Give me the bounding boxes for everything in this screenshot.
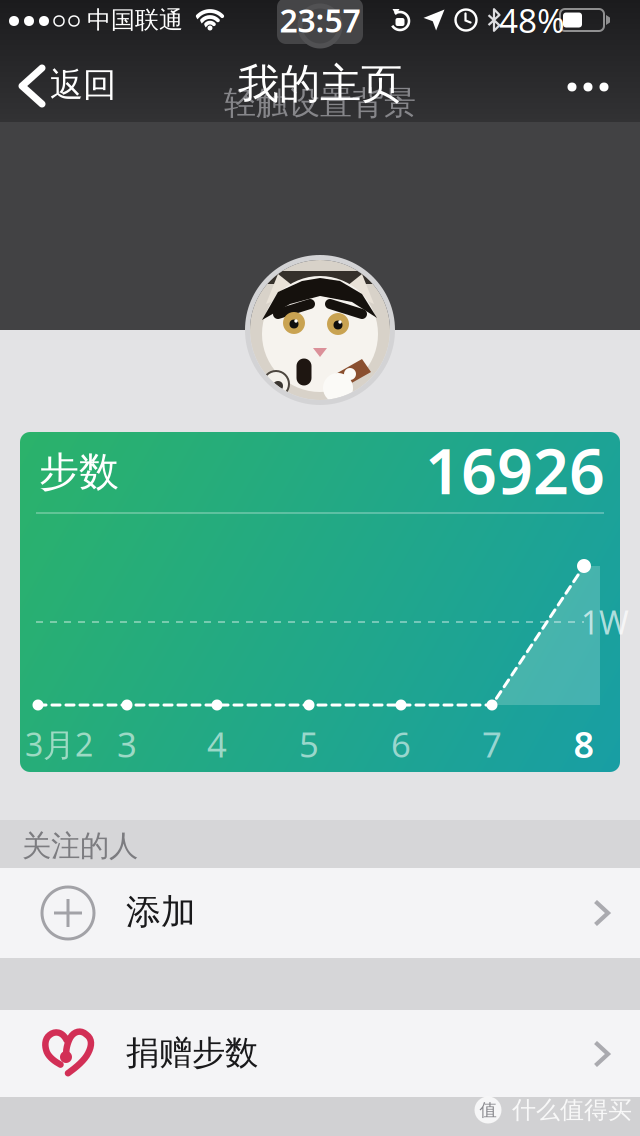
staticText: 5 [299, 721, 319, 767]
staticText: 中国联通 [87, 5, 183, 35]
staticText: 4 [207, 721, 227, 767]
staticText: 值 [479, 1099, 496, 1121]
staticText: 48% [499, 0, 565, 42]
staticText: 1W [581, 601, 629, 643]
staticText: 3月2 [25, 723, 93, 765]
staticText: 轻触设置背景 [224, 83, 416, 123]
staticText: 添加 [126, 891, 196, 933]
staticText: 关注的人 [22, 828, 138, 864]
staticText: 7 [482, 721, 502, 767]
staticText: 23:57 [279, 0, 360, 41]
staticText: 步数 [39, 447, 119, 496]
staticText: 8 [573, 720, 594, 768]
staticText: 我的主页 [238, 59, 402, 109]
staticText: 3 [117, 721, 137, 767]
staticText: 捐赠步数 [126, 1032, 258, 1073]
staticText: 6 [391, 721, 411, 767]
staticText: 什么值得买 [512, 1095, 632, 1125]
staticText: 16926 [425, 428, 605, 512]
staticText: 返回 [50, 64, 116, 105]
